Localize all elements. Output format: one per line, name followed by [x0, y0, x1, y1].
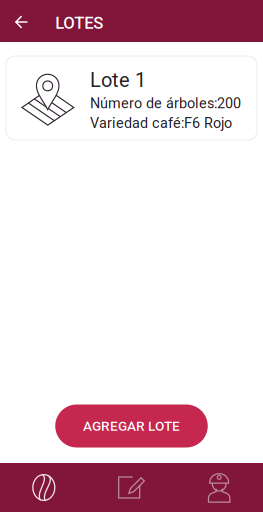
button[interactable]: Back	[0, 0, 55, 42]
staticText: AGREGAR LOTE	[83, 418, 180, 434]
staticText: Variedad café:F6 Rojo	[90, 115, 232, 132]
button[interactable]: Lotes	[0, 463, 88, 512]
staticText: Lote 1	[90, 68, 146, 92]
button[interactable]: AGREGAR LOTE	[55, 404, 208, 447]
button[interactable]: Lote 1	[6, 56, 257, 140]
button[interactable]: Registros	[88, 463, 175, 512]
staticText: Número de árboles:200	[90, 95, 241, 112]
button[interactable]: Perfil	[175, 463, 263, 512]
staticText: LOTES	[55, 13, 103, 33]
